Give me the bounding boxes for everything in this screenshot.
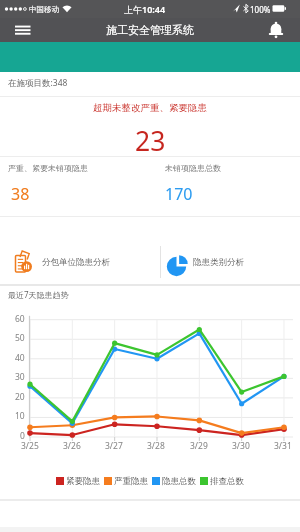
staticText: 3/25: [21, 440, 39, 452]
staticText: 排查总数: [210, 476, 244, 487]
staticText: 严重隐患: [114, 476, 148, 487]
staticText: 170: [165, 183, 193, 205]
staticText: 3/31: [274, 440, 292, 452]
staticText: 23: [135, 123, 166, 155]
staticText: 紧要隐患: [66, 476, 100, 487]
staticText: 最近7天隐患趋势: [8, 289, 69, 300]
button[interactable]: [262, 18, 292, 42]
staticText: 严重、紧要未销项隐患: [8, 163, 88, 173]
staticText: 3/30: [232, 440, 250, 452]
staticText: 未销项隐患总数: [165, 163, 221, 173]
staticText: 超期未整改严重、紧要隐患: [93, 102, 207, 114]
staticText: 60: [15, 313, 25, 325]
staticText: 40: [15, 352, 25, 364]
staticText: 中国移动: [29, 5, 59, 14]
staticText: 上午10:44: [124, 3, 166, 15]
staticText: 30: [15, 371, 25, 383]
staticText: 38: [11, 183, 30, 205]
staticText: 0: [20, 430, 25, 442]
button[interactable]: [0, 217, 160, 284]
button[interactable]: [8, 20, 38, 40]
staticText: 3/27: [105, 440, 123, 452]
button[interactable]: [161, 217, 300, 284]
staticText: 50: [15, 332, 25, 344]
staticText: 隐患类别分析: [193, 257, 244, 268]
staticText: 在施项目数:348: [8, 77, 68, 89]
staticText: 3/26: [63, 440, 81, 452]
staticText: 100%: [250, 4, 271, 15]
staticText: 3/28: [147, 440, 165, 452]
staticText: 施工安全管理系统: [106, 23, 194, 37]
staticText: 20: [15, 391, 25, 403]
staticText: 隐患总数: [162, 476, 196, 487]
staticText: 分包单位隐患分析: [42, 257, 110, 268]
staticText: 3/29: [190, 440, 208, 452]
staticText: 10: [15, 410, 25, 422]
